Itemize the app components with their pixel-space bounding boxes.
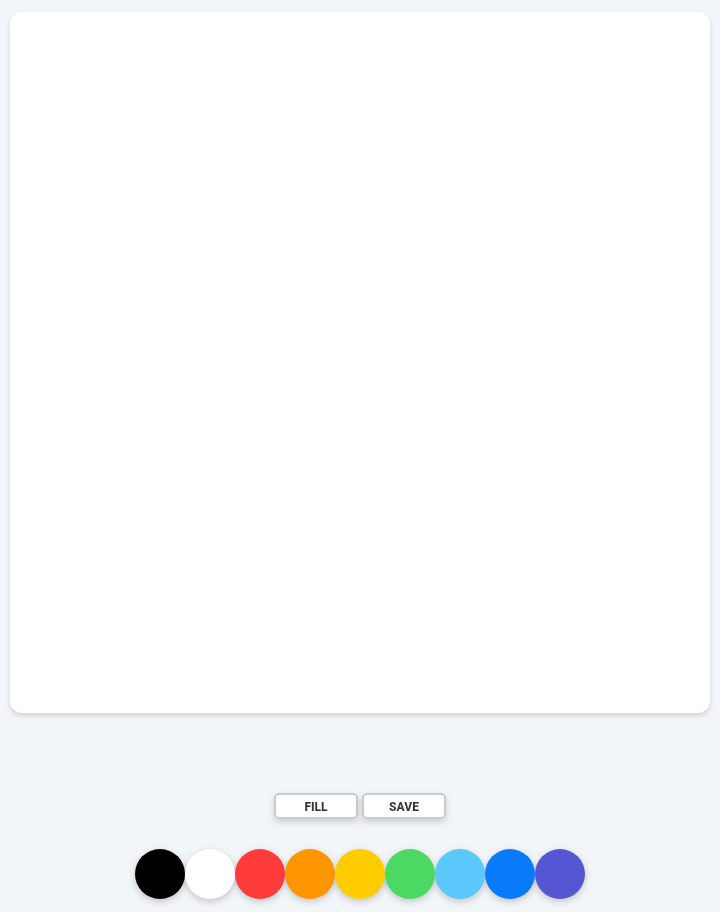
- button[interactable]: Black: [135, 849, 185, 899]
- staticText: FILL: [304, 800, 328, 814]
- button[interactable]: SAVE: [362, 793, 446, 819]
- staticText: SAVE: [389, 800, 419, 814]
- button[interactable]: White: [185, 849, 235, 899]
- button[interactable]: Purple: [535, 849, 585, 899]
- button[interactable]: Yellow: [335, 849, 385, 899]
- button[interactable]: Red: [235, 849, 285, 899]
- button[interactable]: Light blue: [435, 849, 485, 899]
- button[interactable]: FILL: [274, 793, 358, 819]
- button[interactable]: Green: [385, 849, 435, 899]
- button[interactable]: Blue: [485, 849, 535, 899]
- button[interactable]: Orange: [285, 849, 335, 899]
